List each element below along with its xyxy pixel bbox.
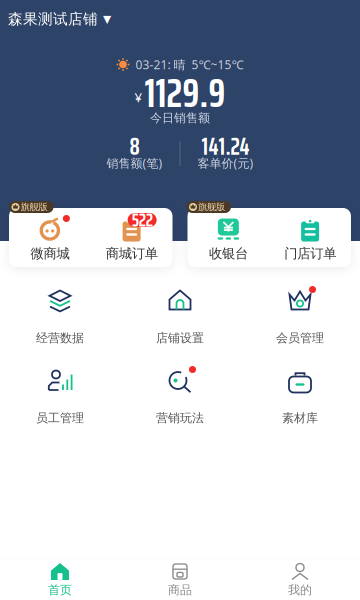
staticText: 经营数据: [36, 331, 84, 345]
button[interactable]: 门店订单: [269, 218, 351, 260]
staticText: 员工管理: [36, 411, 84, 425]
staticText: 会员管理: [276, 331, 324, 345]
button[interactable]: 商品: [120, 558, 240, 600]
staticText: 商品: [168, 583, 192, 597]
button[interactable]: 经营数据: [0, 288, 120, 344]
staticText: 微商城: [30, 245, 69, 262]
staticText: 522: [132, 205, 153, 235]
staticText: 商城订单: [106, 245, 158, 262]
staticText: 我的: [288, 583, 312, 597]
staticText: 森果测试店铺: [8, 10, 98, 28]
button[interactable]: 522: [91, 218, 173, 260]
staticText: 店铺设置: [156, 331, 204, 345]
staticText: 141.24: [201, 128, 249, 165]
button[interactable]: 微商城: [9, 218, 91, 260]
staticText: 03-21: 晴 5℃~15℃: [135, 56, 243, 72]
button[interactable]: 营销玩法: [120, 368, 240, 424]
staticText: 素材库: [282, 411, 318, 425]
staticText: 1129.9: [144, 61, 225, 124]
button[interactable]: 我的: [240, 558, 360, 600]
staticText: 门店订单: [284, 245, 336, 262]
staticText: 收银台: [209, 245, 248, 262]
button[interactable]: 员工管理: [0, 368, 120, 424]
staticText: ▼: [103, 13, 111, 25]
button[interactable]: 素材库: [240, 368, 360, 424]
staticText: 旗舰版: [198, 201, 225, 213]
staticText: 销售额(笔): [106, 155, 162, 171]
button[interactable]: 收银台: [187, 218, 269, 260]
button[interactable]: 会员管理: [240, 288, 360, 344]
staticText: 客单价(元): [197, 155, 253, 171]
button[interactable]: 店铺设置: [120, 288, 240, 344]
staticText: 今日销售额: [150, 111, 210, 125]
button[interactable]: 首页: [0, 558, 120, 600]
staticText: 旗舰版: [20, 201, 47, 213]
staticText: 首页: [48, 583, 72, 597]
staticText: 营销玩法: [156, 411, 204, 425]
staticText: 8: [129, 128, 139, 165]
staticText: ¥: [134, 88, 142, 106]
